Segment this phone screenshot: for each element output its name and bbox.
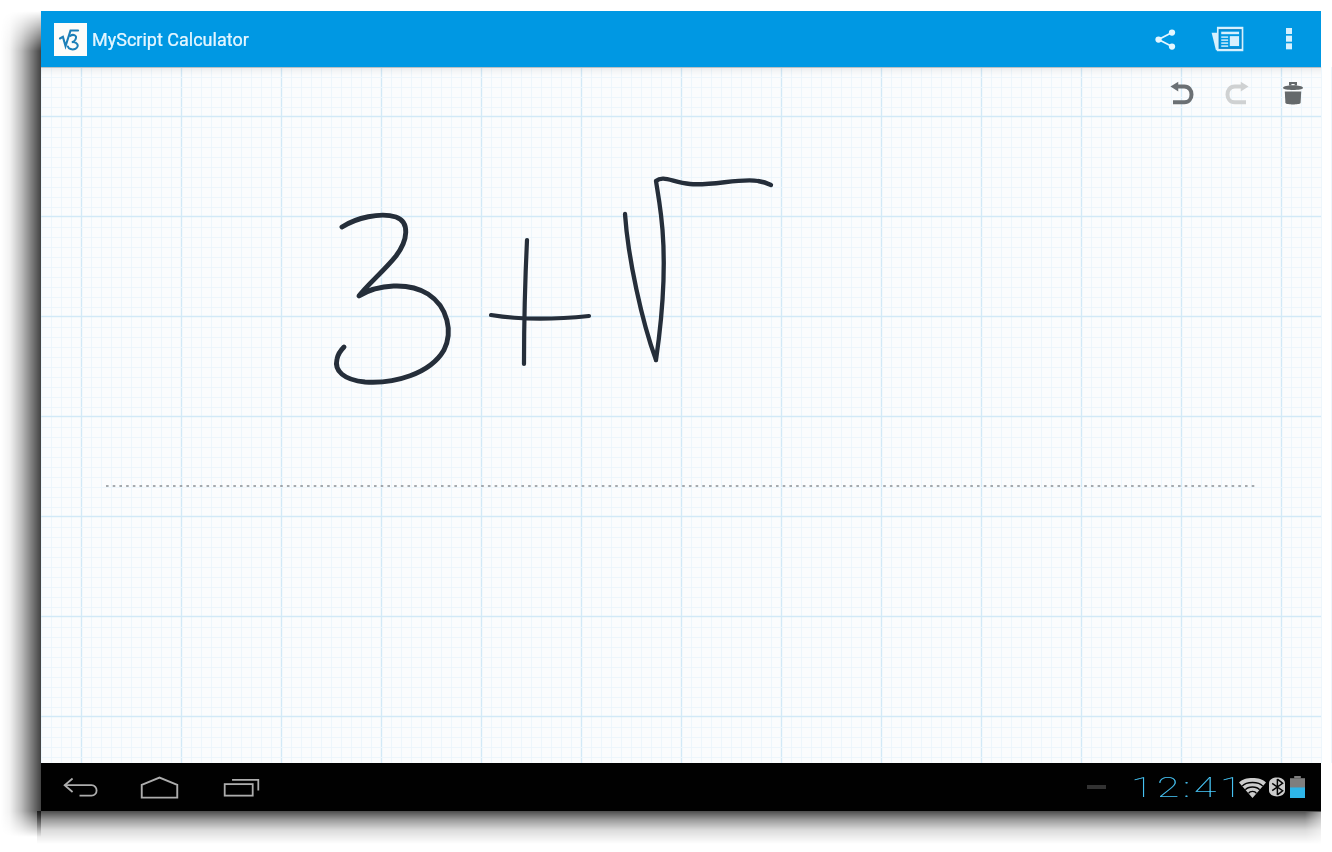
button[interactable]: More options [1261, 11, 1316, 67]
button[interactable]: App icon [54, 23, 87, 56]
staticText: MyScript Calculator [92, 29, 249, 50]
staticText: 12:41 [1131, 771, 1247, 804]
button[interactable]: Share [1136, 11, 1194, 67]
button[interactable]: Home [135, 763, 183, 811]
button[interactable]: Recent apps [217, 763, 265, 811]
button[interactable]: Memo [1194, 11, 1261, 67]
button[interactable]: Redo [1209, 70, 1265, 116]
button[interactable]: Back [56, 763, 104, 811]
button[interactable]: Undo [1153, 70, 1209, 116]
button[interactable]: Delete [1265, 70, 1321, 116]
